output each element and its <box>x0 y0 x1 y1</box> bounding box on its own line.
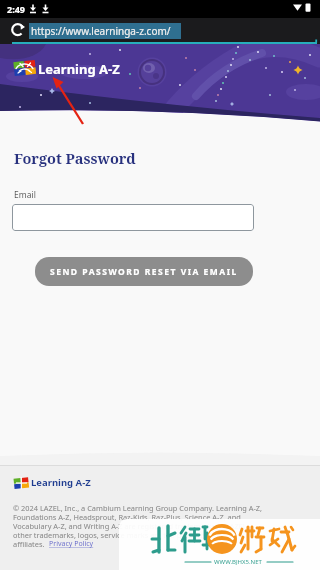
staticText: Forgot Password <box>14 148 136 168</box>
staticText: Vocabulary A-Z, and Writing A-Z are regi… <box>13 521 249 531</box>
staticText: SEND PASSWORD RESET VIA EMAIL <box>50 266 238 278</box>
button[interactable]: SEND PASSWORD RESET VIA EMAIL <box>35 257 253 286</box>
button[interactable]: Privacy Policy <box>49 539 94 549</box>
staticText: 2:49 <box>7 3 25 15</box>
staticText: affiliates. <box>13 539 45 549</box>
staticText: © 2024 LAZEL, Inc., a Cambium Learning G… <box>13 503 263 513</box>
staticText: Foundations A-Z, Headsprout, Raz-Kids, R… <box>13 512 241 522</box>
staticText: Learning A-Z <box>31 476 91 489</box>
staticText: WWW.BJHX5.NET <box>214 558 262 566</box>
button[interactable]: https://www.learninga-z.com/ <box>0 18 320 44</box>
staticText: https://www.learninga-z.com/ <box>31 24 171 38</box>
staticText: other trademarks, logos, service marks a… <box>13 530 235 540</box>
staticText: Email <box>14 189 36 201</box>
button[interactable] <box>12 204 254 231</box>
button[interactable]: WWW.BJHX5.NET <box>119 519 320 570</box>
staticText: Learning A-Z <box>38 60 120 78</box>
